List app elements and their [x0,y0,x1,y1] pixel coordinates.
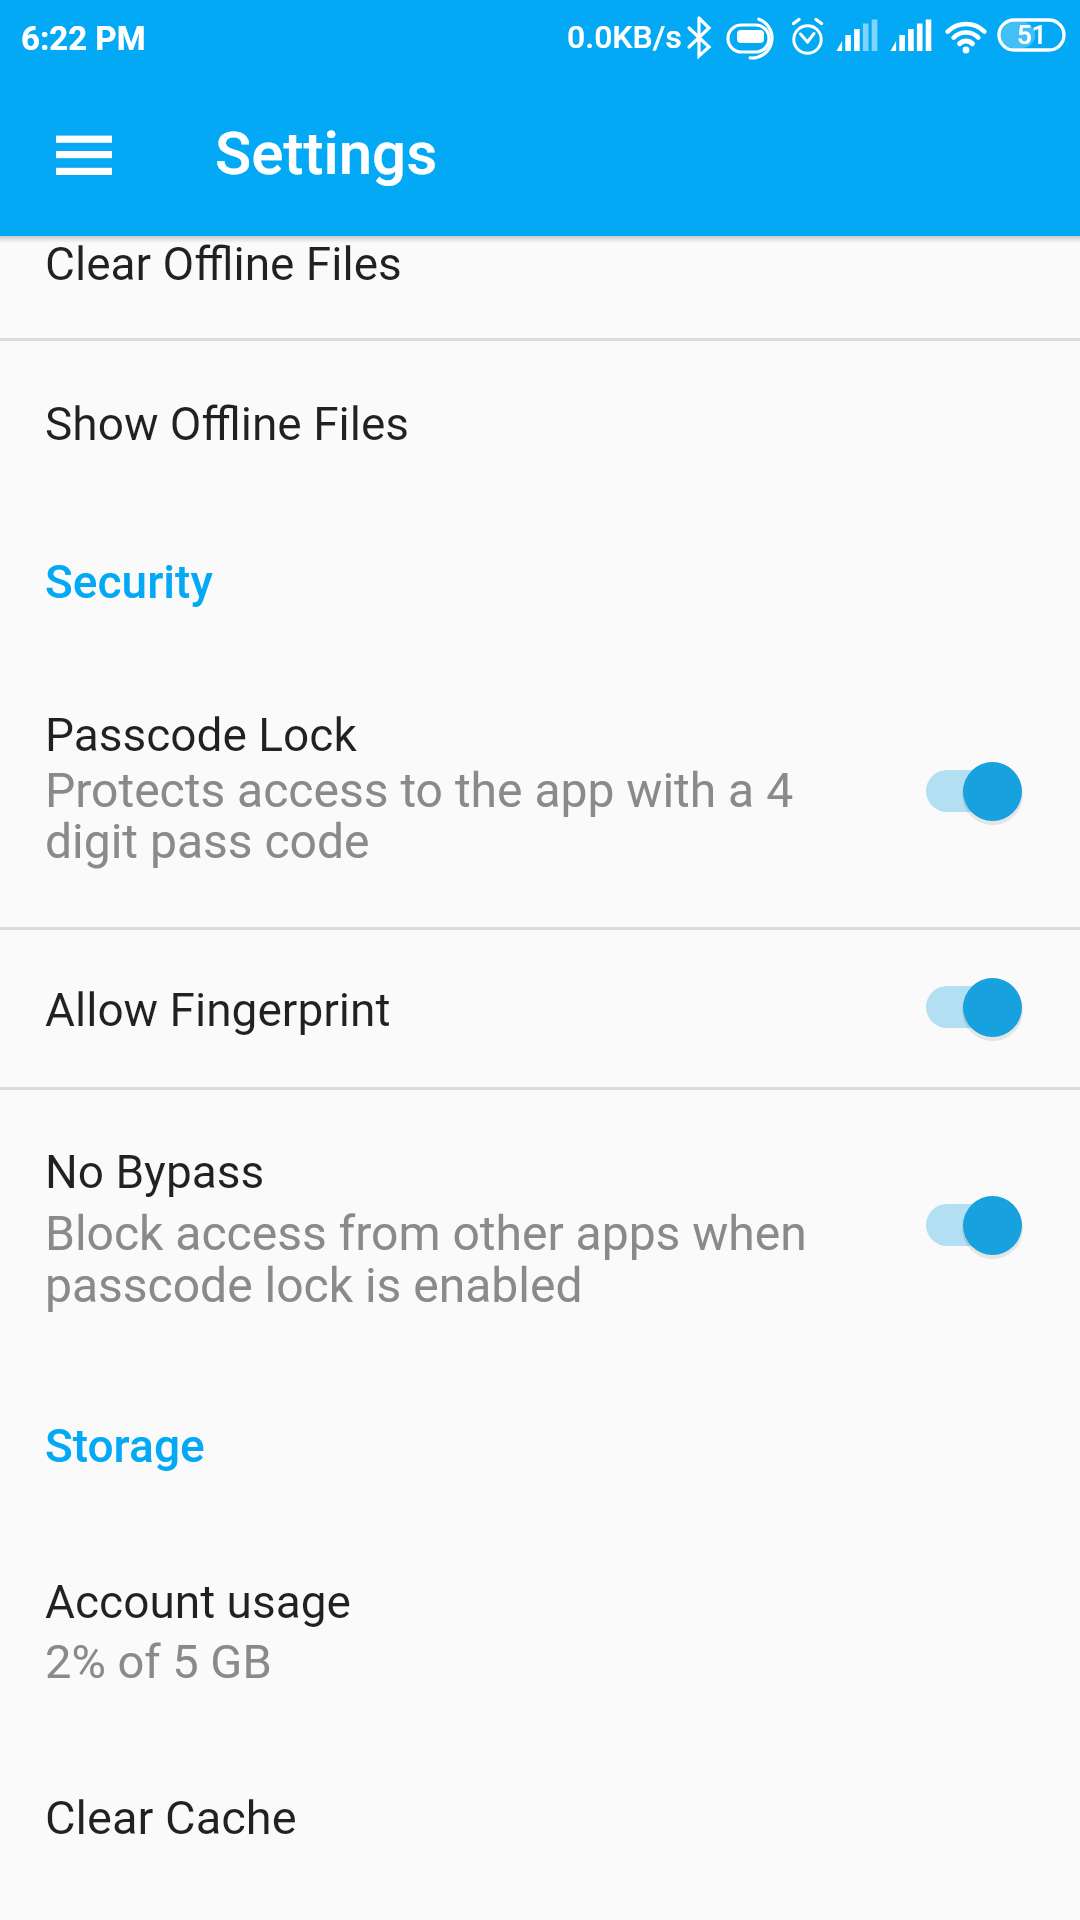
staticText: Settings [215,118,438,188]
staticText: passcode lock is enabled [45,1257,583,1313]
staticText: 51 [1017,20,1047,50]
staticText: Show Offline Files [45,397,410,451]
staticText: 6:22 PM [21,19,146,58]
staticText: Clear Offline Files [45,237,402,291]
button[interactable] [0,1520,1080,1740]
button[interactable] [40,120,128,191]
staticText: Allow Fingerprint [45,983,391,1037]
staticText: No Bypass [45,1145,265,1199]
staticText: Passcode Lock [45,708,357,762]
staticText: Security [45,555,213,609]
staticText: Protects access to the app with a 4 [45,762,794,818]
button[interactable] [0,929,1080,1085]
button[interactable] [0,640,1080,925]
staticText: 0.0KB/s [567,18,682,56]
staticText: Storage [45,1419,205,1473]
staticText: Clear Cache [45,1790,297,1845]
staticText: 2% of 5 GB [45,1634,272,1689]
button[interactable] [0,237,1080,337]
button[interactable] [0,1089,1080,1350]
staticText: Block access from other apps when [45,1205,807,1261]
staticText: Account usage [45,1575,351,1629]
button[interactable] [0,340,1080,526]
button[interactable] [0,1740,1080,1920]
staticText: digit pass code [45,813,370,869]
